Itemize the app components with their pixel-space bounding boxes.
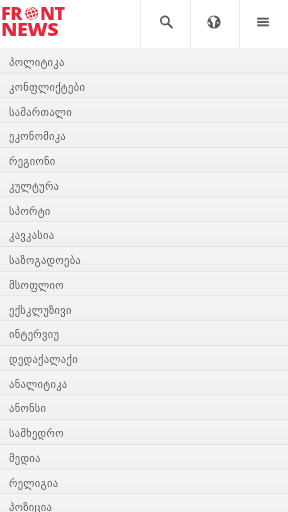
button[interactable]: პოზიცია	[0, 494, 288, 512]
button[interactable]: მსოფლიო	[0, 272, 288, 297]
staticText: კავკასია	[9, 229, 55, 241]
button[interactable]: ანალიტიკა	[0, 371, 288, 396]
staticText: სამართალი	[9, 106, 73, 118]
button[interactable]: Search	[141, 0, 190, 48]
staticText: პოლიტიკა	[9, 56, 65, 68]
button[interactable]: საზოგადოება	[0, 247, 288, 272]
button[interactable]: დედაქალაქი	[0, 346, 288, 371]
staticText: მედია	[9, 452, 41, 464]
staticText: კულტურა	[9, 180, 60, 192]
button[interactable]: ინტერვიუ	[0, 321, 288, 346]
staticText: NEWS	[1, 18, 59, 41]
button[interactable]: კულტურა	[0, 173, 288, 198]
staticText: ექსკლუზივი	[9, 304, 72, 316]
button[interactable]: რელიგია	[0, 470, 288, 495]
staticText: პოზიცია	[9, 501, 53, 512]
staticText: ანალიტიკა	[9, 378, 68, 390]
staticText: სპორტი	[9, 205, 51, 217]
button[interactable]: ეკონომიკა	[0, 123, 288, 148]
button[interactable]: ანონსი	[0, 395, 288, 420]
button[interactable]: სამხედრო	[0, 420, 288, 445]
button[interactable]: მედია	[0, 445, 288, 470]
staticText: საზოგადოება	[9, 254, 82, 266]
staticText: სამხედრო	[9, 427, 64, 439]
button[interactable]: რეგიონი	[0, 148, 288, 173]
button[interactable]: სპორტი	[0, 198, 288, 223]
staticText: მსოფლიო	[9, 279, 64, 291]
staticText: FR	[1, 2, 22, 25]
staticText: ეკონომიკა	[9, 130, 66, 142]
button[interactable]: ექსკლუზივი	[0, 297, 288, 322]
staticText: კონფლიქტები	[9, 81, 86, 93]
button[interactable]: პოლიტიკა	[0, 47, 288, 74]
staticText: ანონსი	[9, 402, 47, 414]
button[interactable]: Menu	[240, 0, 288, 48]
staticText: ინტერვიუ	[9, 328, 60, 340]
button[interactable]: კონფლიქტები	[0, 74, 288, 99]
staticText: დედაქალაქი	[9, 353, 78, 365]
button[interactable]: სამართალი	[0, 99, 288, 124]
button[interactable]: Language	[191, 0, 239, 48]
staticText: რეგიონი	[9, 155, 56, 167]
button[interactable]: Front News	[0, 0, 140, 48]
staticText: რელიგია	[9, 477, 59, 489]
button[interactable]: კავკასია	[0, 222, 288, 247]
staticText: NT	[40, 2, 65, 25]
